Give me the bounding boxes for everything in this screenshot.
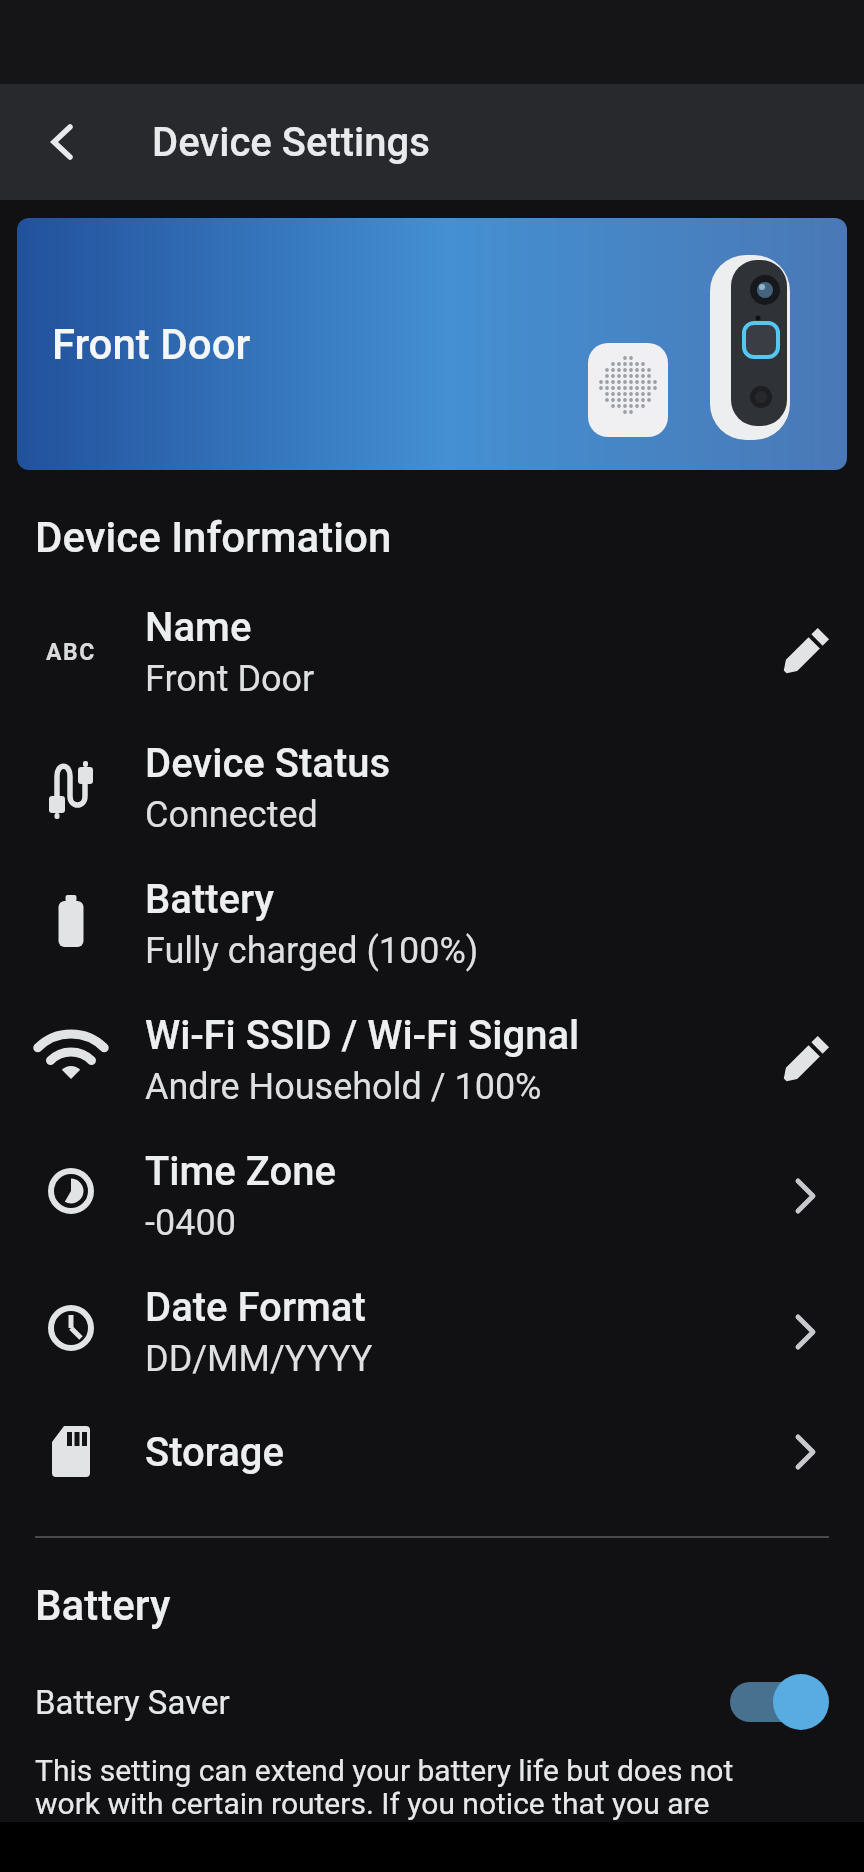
button[interactable]: [30, 109, 96, 175]
staticText: -0400: [145, 1202, 236, 1244]
staticText: Date Format: [145, 1284, 366, 1331]
button[interactable]: ABC: [0, 584, 864, 720]
staticText: This setting can extend your battery lif…: [35, 1753, 734, 1821]
staticText: Battery Saver: [35, 1683, 230, 1722]
staticText: Device Settings: [152, 119, 430, 166]
button[interactable]: [730, 1674, 829, 1730]
button[interactable]: Time Zone: [0, 1128, 864, 1264]
staticText: DD/MM/YYYY: [145, 1338, 373, 1380]
staticText: Battery: [35, 1581, 171, 1630]
staticText: Connected: [145, 794, 318, 836]
staticText: Andre Household / 100%: [145, 1066, 542, 1108]
button[interactable]: Date Format: [0, 1264, 864, 1400]
button[interactable]: Storage: [0, 1400, 864, 1504]
button[interactable]: Front Door: [17, 218, 847, 470]
staticText: Device Status: [145, 740, 391, 787]
staticText: Name: [145, 604, 252, 651]
staticText: ABC: [46, 639, 96, 666]
button[interactable]: Battery: [0, 856, 864, 992]
staticText: Front Door: [52, 320, 251, 369]
button[interactable]: Device Status: [0, 720, 864, 856]
staticText: Storage: [145, 1429, 284, 1476]
staticText: Device Information: [35, 513, 392, 562]
staticText: Front Door: [145, 658, 315, 700]
staticText: Time Zone: [145, 1148, 336, 1195]
staticText: Battery: [145, 876, 274, 923]
staticText: Fully charged (100%): [145, 930, 479, 972]
staticText: Wi-Fi SSID / Wi-Fi Signal: [145, 1012, 580, 1059]
button[interactable]: Wi-Fi SSID / Wi-Fi Signal: [0, 992, 864, 1128]
